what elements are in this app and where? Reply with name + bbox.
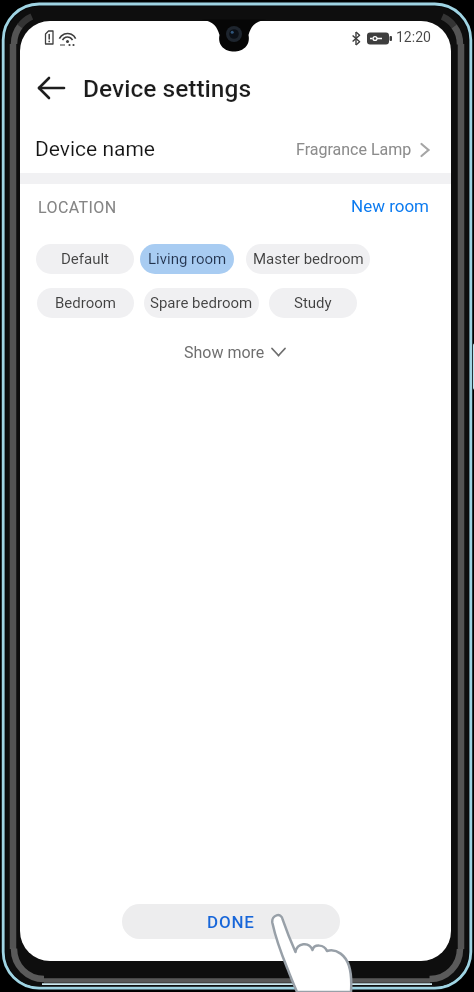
button[interactable]: Show more — [155, 335, 315, 369]
staticText: Living room — [148, 250, 227, 268]
button[interactable]: Bedroom — [37, 288, 134, 318]
staticText: Device settings — [83, 74, 252, 103]
staticText: Study — [294, 294, 332, 312]
button[interactable]: New room — [325, 189, 443, 223]
staticText: Master bedroom — [253, 250, 364, 268]
button[interactable] — [28, 66, 74, 110]
button[interactable]: Spare bedroom — [144, 288, 259, 318]
button[interactable]: DONE — [122, 904, 340, 939]
staticText: LOCATION — [38, 198, 117, 217]
staticText: Default — [61, 250, 109, 268]
staticText: Device name — [35, 137, 155, 162]
staticText: Bedroom — [55, 294, 116, 312]
staticText: Fragrance Lamp — [296, 140, 412, 159]
button[interactable]: Master bedroom — [246, 244, 370, 274]
button[interactable]: Default — [36, 244, 134, 274]
staticText: Spare bedroom — [150, 294, 253, 312]
button[interactable]: Device name — [20, 126, 451, 173]
staticText: New room — [351, 196, 430, 216]
staticText: 12:20 — [396, 29, 431, 45]
button[interactable]: Living room — [140, 244, 234, 274]
button[interactable]: Study — [269, 288, 357, 318]
staticText: DONE — [207, 912, 255, 932]
staticText: Show more — [184, 343, 265, 362]
